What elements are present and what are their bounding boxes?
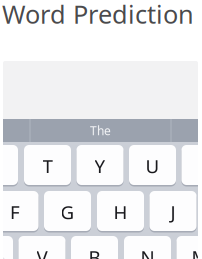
staticText: Word Prediction xyxy=(2,0,194,31)
staticText: V xyxy=(36,245,47,259)
staticText: N xyxy=(140,245,154,259)
staticText: F xyxy=(10,200,20,224)
staticText: H xyxy=(113,200,127,224)
staticText: The xyxy=(90,122,111,138)
staticText: Y xyxy=(94,154,105,178)
staticText: B xyxy=(88,245,100,259)
staticText: J xyxy=(170,200,175,224)
staticText: M xyxy=(191,245,202,259)
staticText: T xyxy=(42,154,52,178)
staticText: U xyxy=(145,154,159,178)
staticText: G xyxy=(60,200,74,224)
